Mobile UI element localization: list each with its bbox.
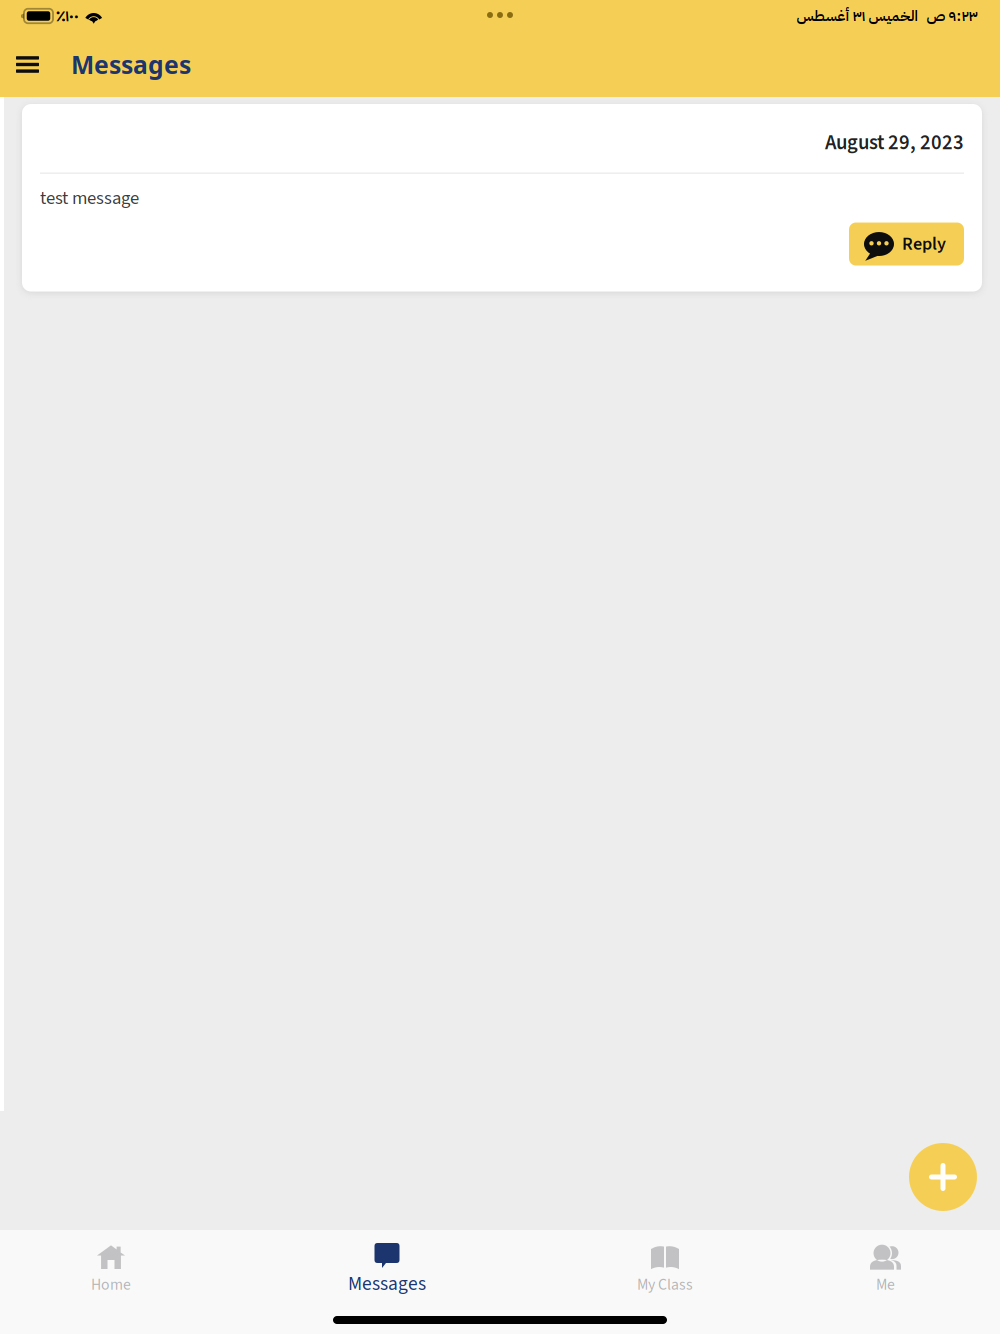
staticText: My Class bbox=[637, 1274, 693, 1296]
staticText: Me bbox=[876, 1274, 895, 1296]
staticText: ٪١٠٠ bbox=[56, 4, 79, 28]
button[interactable]: Messages bbox=[348, 1243, 426, 1298]
button[interactable]: Me bbox=[870, 1245, 901, 1296]
staticText: Messages bbox=[348, 1270, 426, 1298]
button[interactable]: New message bbox=[909, 1143, 977, 1211]
staticText: Reply bbox=[902, 231, 946, 257]
button[interactable]: Home bbox=[91, 1245, 131, 1296]
staticText: test message bbox=[40, 185, 139, 211]
staticText: ٩:٢٣ ص الخميس ٣١ أغسطس bbox=[796, 5, 977, 27]
staticText: Messages bbox=[71, 48, 191, 81]
button[interactable]: Menu bbox=[5, 40, 50, 88]
staticText: August 29, 2023 bbox=[825, 128, 964, 157]
button[interactable]: My Class bbox=[637, 1245, 693, 1296]
button[interactable]: Reply bbox=[849, 222, 964, 265]
staticText: Home bbox=[91, 1274, 131, 1296]
